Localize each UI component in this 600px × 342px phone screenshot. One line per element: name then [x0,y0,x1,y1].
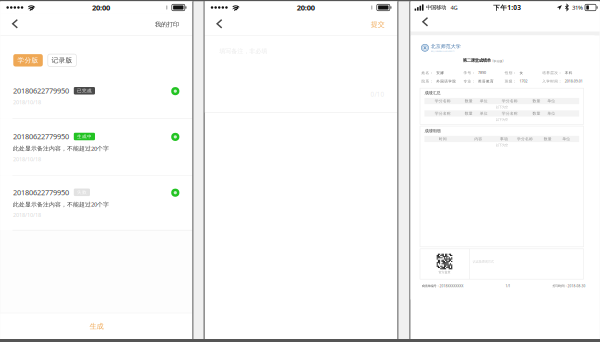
staticText: 生成 [89,322,103,331]
staticText: 下午1:03 [493,3,521,12]
staticText: 单位 [480,99,488,103]
button[interactable]: 提交 [360,13,397,35]
staticText: 学分名称 [435,99,451,103]
staticText: 事项 [500,136,508,141]
staticText: 北京师范大学 [431,43,461,49]
staticText: 失败 [77,189,87,195]
staticText: 记录版 [52,56,73,64]
staticText: 外国语学院 [436,79,456,83]
button[interactable]: Back [411,13,438,31]
staticText: 本科 [565,70,573,75]
staticText: 此处显示备注内容，不能超过20个字 [13,200,109,208]
staticText: 学分名称 [502,99,518,103]
staticText: 7890 [478,70,486,75]
staticText: 成绩单编号：2018XXXXXXXX [422,284,464,288]
staticText: 20:00 [92,2,110,13]
staticText: 1702 [519,79,527,84]
staticText: 学分名称 [517,136,533,141]
staticText: 认证及查询方式 [472,259,493,264]
staticText: 以下为空 [496,143,508,147]
staticText: 女 [519,70,523,75]
staticText: 单位 [480,111,488,116]
staticText: 单位 [547,99,555,103]
staticText: 数量 [465,111,473,116]
staticText: 我的打印 [155,21,179,28]
button[interactable]: Back [205,13,232,35]
staticText: 打印时间：2018-08-30 [553,284,586,288]
staticText: 英语教育 [478,79,494,83]
staticText: 20180622779950 [13,86,69,96]
staticText: 单位 [547,111,555,116]
staticText: 20:00 [297,2,315,13]
button[interactable]: 生成 [0,313,192,339]
staticText: 数量 [465,99,473,103]
staticText: 入学时间： [542,79,562,83]
staticText: 生成中 [77,134,92,139]
staticText: 4G [450,4,457,11]
staticText: 学分版 [17,56,38,64]
staticText: 2018/10/18 [13,211,41,219]
button[interactable]: 20180622779950 [0,119,192,175]
staticText: 1/1 [506,284,511,288]
staticText: 0/10 [370,90,384,99]
staticText: 成绩明细 [424,128,440,133]
staticText: 成绩汇总 [424,90,440,95]
staticText: 以下为空 [496,117,508,122]
staticText: 数量 [532,111,540,116]
staticText: BEIJING NORMAL UNIVERSITY [431,50,455,52]
staticText: 内容 [474,136,482,141]
staticText: 以下为空 [496,105,508,109]
button[interactable]: Back [0,13,28,35]
staticText: 姓名： [422,70,434,75]
staticText: 已完成 [77,88,92,94]
staticText: 第二课堂成绩单 [463,58,491,63]
staticText: 学号： [463,70,475,75]
staticText: 此处显示备注内容，不能超过20个字 [13,144,109,152]
staticText: 数量 [544,136,552,141]
staticText: 安娜 [436,70,444,75]
staticText: 填写备注，非必填 [219,47,267,55]
staticText: 时间 [439,136,447,141]
staticText: 提交 [371,20,385,29]
staticText: 数量 [532,99,540,103]
button[interactable]: 20180622779950 [0,176,192,230]
staticText: 2018/10/18 [13,155,41,163]
staticText: 培养层次： [542,70,562,75]
staticText: 31% [572,3,583,12]
staticText: 学分名称 [435,111,451,116]
button[interactable]: 学分版 [13,54,43,66]
staticText: 性别： [505,70,517,75]
staticText: 学分名称 [502,111,518,116]
staticText: 中国移动 [426,4,446,11]
staticText: (学分版) [492,59,503,63]
staticText: 院系： [422,79,434,83]
staticText: 20180622779950 [13,131,69,141]
staticText: 官方盖章 [438,270,450,274]
staticText: 20180622779950 [13,187,69,197]
staticText: 班级： [505,79,517,83]
button[interactable]: 20180622779950 [0,73,192,118]
staticText: 2018-09-01 [565,79,583,84]
button[interactable]: 记录版 [48,54,76,66]
staticText: 2018/10/18 [13,98,41,106]
staticText: 专业： [463,79,475,83]
staticText: 单位 [562,136,570,141]
